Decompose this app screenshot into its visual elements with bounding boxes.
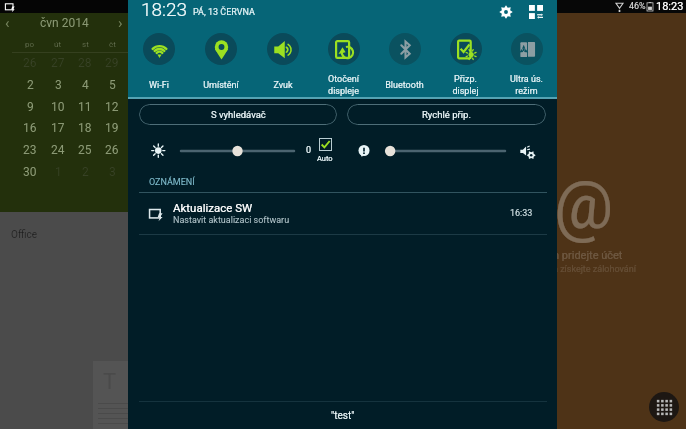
staticText: 17 — [51, 121, 65, 135]
staticText: Bluetooth — [385, 80, 424, 91]
staticText: 5 — [109, 78, 116, 92]
staticText: po — [25, 40, 35, 49]
staticText: 10 — [51, 100, 65, 114]
staticText: 26 — [105, 143, 119, 157]
button[interactable]: Auto brightness — [151, 143, 167, 159]
staticText: ‹ — [5, 14, 10, 32]
staticText: 30 — [23, 165, 37, 179]
staticText: 9 — [27, 100, 34, 114]
staticText: PÁ, 13 ČERVNA — [193, 7, 255, 18]
button[interactable]: Notifications — [357, 144, 371, 158]
staticText: 26 — [23, 56, 37, 70]
staticText: čvn 2014 — [40, 16, 89, 30]
staticText: 3 — [109, 165, 116, 179]
staticText: Přizp. displej — [452, 74, 479, 96]
staticText: Wi-Fi — [149, 80, 169, 91]
staticText: 18:23 — [141, 0, 188, 20]
staticText: T — [103, 369, 117, 395]
staticText: 12 — [105, 100, 119, 114]
staticText: 0 — [306, 145, 312, 156]
button[interactable]: Bluetooth — [374, 33, 435, 99]
button[interactable]: Umístění — [190, 33, 252, 99]
staticText: 19 — [105, 121, 119, 135]
staticText: 46% — [629, 1, 646, 12]
staticText: 1 — [55, 165, 62, 179]
button[interactable]: Sound settings — [519, 143, 536, 160]
button[interactable]: Ultra ús. režim — [496, 33, 557, 99]
button[interactable]: Auto — [317, 138, 333, 163]
staticText: Auto — [317, 154, 333, 163]
button[interactable]: Aktualizace SW — [128, 193, 557, 234]
staticText: 29 — [105, 56, 119, 70]
staticText: 16 — [23, 121, 37, 135]
button[interactable]: Zvuk — [252, 33, 313, 99]
staticText: Aktualizace SW — [173, 201, 253, 214]
staticText: Zvuk — [273, 80, 293, 91]
staticText: @ — [554, 167, 614, 244]
button[interactable]: Rychlé přip. — [347, 104, 546, 125]
staticText: 23 — [23, 143, 37, 157]
staticText: 18 — [78, 121, 92, 135]
button[interactable]: Edit quick settings — [525, 1, 547, 23]
staticText: st — [82, 40, 89, 49]
staticText: n pridejte účet — [553, 249, 623, 262]
button[interactable]: Otočení displeje — [313, 33, 374, 99]
staticText: Otočení displeje — [328, 74, 359, 96]
staticText: a získejte zálohování — [553, 264, 636, 275]
staticText: 2 — [82, 165, 89, 179]
button[interactable]: Apps — [649, 392, 679, 422]
button[interactable]: ‹ — [5, 13, 123, 33]
button[interactable]: S vyhledávač — [139, 104, 337, 125]
button[interactable]: Slider — [386, 144, 505, 158]
staticText: 16:33 — [510, 208, 533, 219]
staticText: 27 — [51, 56, 65, 70]
button[interactable]: Slider — [181, 144, 294, 158]
staticText: 4 — [82, 78, 89, 92]
staticText: 3 — [55, 78, 62, 92]
staticText: čt — [109, 40, 116, 49]
staticText: 28 — [78, 56, 92, 70]
staticText: OZNÁMENÍ — [149, 177, 195, 188]
staticText: Nastavit aktualizaci softwaru — [173, 215, 290, 226]
staticText: út — [54, 40, 62, 49]
staticText: 11 — [78, 100, 92, 114]
staticText: 24 — [51, 143, 65, 157]
button[interactable]: Wi-Fi — [128, 33, 190, 99]
staticText: Rychlé přip. — [422, 109, 471, 120]
staticText: Umístění — [203, 80, 239, 91]
button[interactable]: Přizp. displej — [435, 33, 496, 99]
staticText: Office — [11, 229, 37, 241]
staticText: Ultra ús. režim — [510, 74, 543, 96]
staticText: 2 — [27, 78, 34, 92]
staticText: S vyhledávač — [211, 109, 266, 120]
button[interactable]: Settings — [495, 1, 517, 23]
staticText: › — [118, 14, 123, 32]
staticText: 18:23 — [656, 0, 684, 13]
staticText: "test" — [331, 410, 355, 422]
staticText: 25 — [78, 143, 92, 157]
